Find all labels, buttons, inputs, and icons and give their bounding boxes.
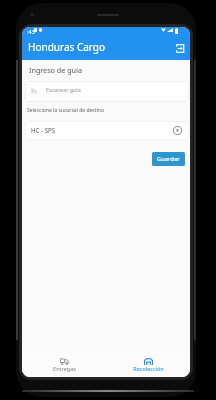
staticText: HC - SPS [31, 126, 56, 134]
staticText: Honduras Cargo [28, 40, 106, 54]
staticText: Recolección [133, 365, 164, 372]
button[interactable]: Escanear guía [25, 81, 189, 102]
staticText: Seleccione la sucursal de destino [27, 107, 104, 114]
button[interactable]: Recolección [106, 353, 190, 377]
button[interactable]: Guardar [152, 152, 185, 166]
button[interactable]: Entregas [22, 353, 106, 377]
staticText: Escanear guía [46, 86, 81, 93]
staticText: :43 [27, 28, 35, 36]
button[interactable]: HC - SPS [25, 121, 189, 140]
staticText: Ingreso de guía [29, 65, 82, 75]
staticText: Guardar [157, 155, 180, 163]
staticText: Entregas [53, 365, 76, 372]
button[interactable]: Cerrar sesion [173, 41, 188, 56]
